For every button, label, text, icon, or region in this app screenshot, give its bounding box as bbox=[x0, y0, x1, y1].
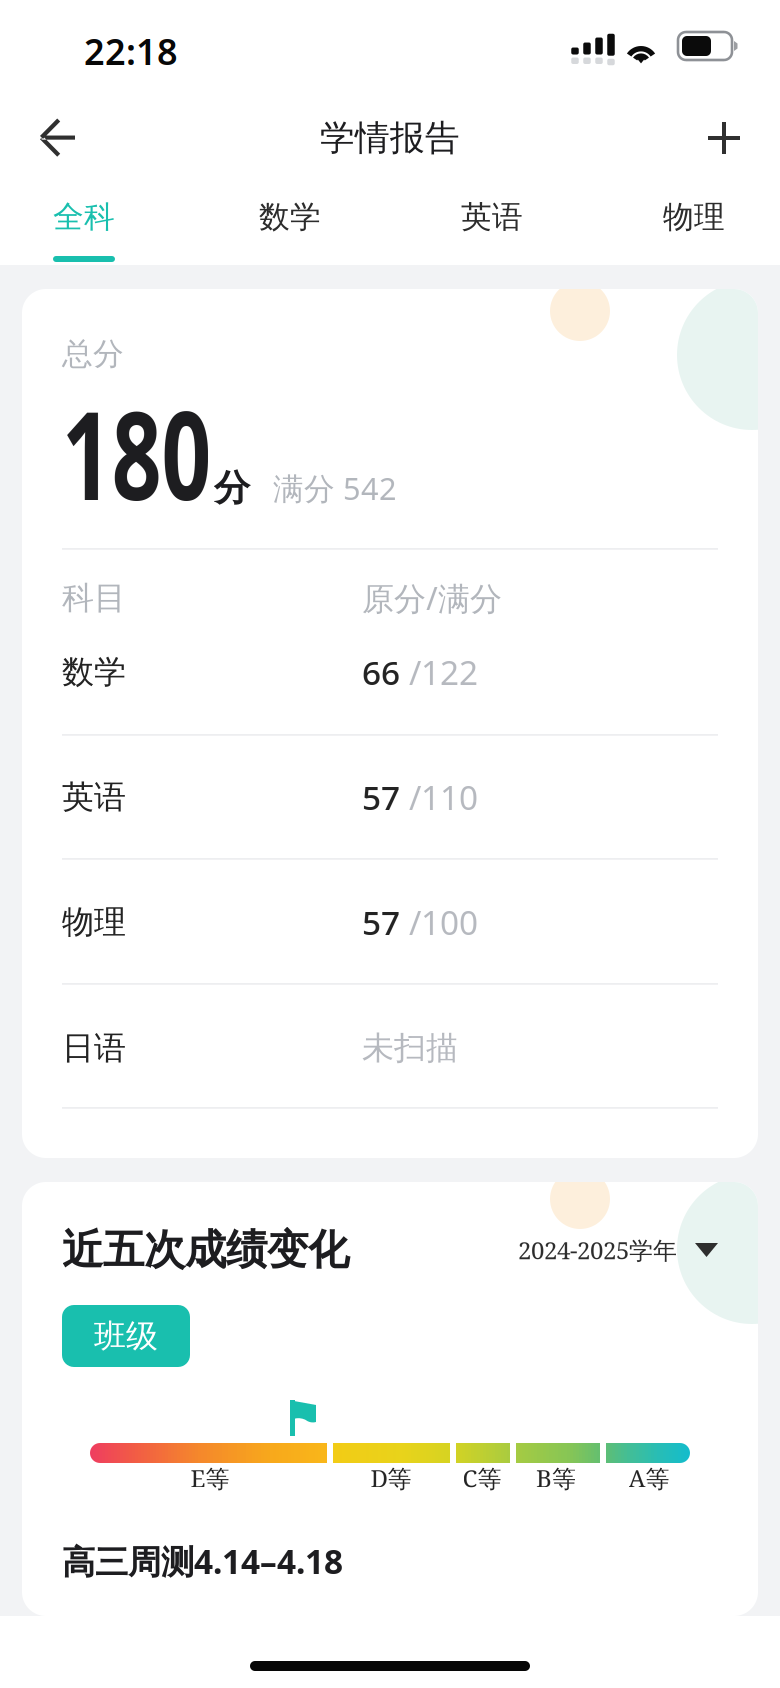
button[interactable]: 全科 bbox=[0, 184, 174, 265]
staticText: 满分 542 bbox=[273, 468, 397, 508]
staticText: 科目 bbox=[62, 578, 126, 618]
button[interactable]: Add bbox=[680, 99, 768, 177]
staticText: 英语 bbox=[461, 198, 523, 236]
staticText: 日语 bbox=[62, 1028, 126, 1068]
staticText: 未扫描 bbox=[362, 1028, 458, 1068]
staticText: /100 bbox=[400, 900, 478, 944]
staticText: 22:18 bbox=[84, 27, 178, 75]
staticText: E等 bbox=[190, 1462, 229, 1494]
staticText: 66 bbox=[362, 650, 400, 694]
staticText: 180 bbox=[62, 371, 272, 534]
staticText: D等 bbox=[370, 1462, 411, 1494]
staticText: 物理 bbox=[62, 902, 126, 942]
button[interactable]: 班级 bbox=[62, 1305, 190, 1367]
button[interactable]: 物理 bbox=[604, 184, 780, 265]
staticText: 2024-2025学年 bbox=[518, 1234, 677, 1266]
staticText: A等 bbox=[628, 1462, 669, 1494]
button[interactable]: 数学 bbox=[200, 184, 380, 265]
staticText: 高三周测4.14–4.18 bbox=[62, 1539, 343, 1583]
staticText: B等 bbox=[536, 1462, 576, 1494]
button[interactable]: Back bbox=[14, 99, 102, 177]
staticText: C等 bbox=[462, 1462, 501, 1494]
staticText: 班级 bbox=[94, 1316, 158, 1356]
staticText: 全科 bbox=[53, 198, 115, 236]
staticText: 近五次成绩变化 bbox=[62, 1225, 349, 1275]
staticText: 原分/满分 bbox=[362, 577, 502, 619]
staticText: 分 bbox=[214, 466, 250, 510]
staticText: 物理 bbox=[663, 198, 725, 236]
staticText: /110 bbox=[400, 775, 478, 819]
staticText: 学情报告 bbox=[320, 117, 460, 159]
staticText: 英语 bbox=[62, 777, 126, 817]
staticText: 数学 bbox=[259, 198, 321, 236]
button[interactable]: 2024-2025学年 bbox=[507, 1234, 718, 1266]
staticText: 57 bbox=[362, 775, 400, 819]
staticText: /122 bbox=[400, 650, 478, 694]
staticText: 总分 bbox=[62, 335, 124, 373]
staticText: 57 bbox=[362, 900, 400, 944]
staticText: 数学 bbox=[62, 652, 126, 692]
button[interactable]: 英语 bbox=[402, 184, 582, 265]
